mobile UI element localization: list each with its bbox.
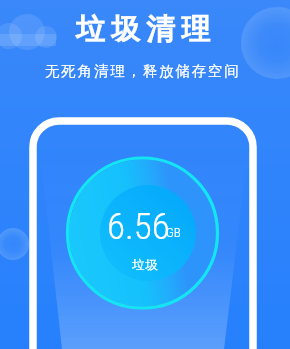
staticText: 垃圾 — [132, 257, 158, 273]
staticText: 垃圾清理 — [73, 11, 213, 48]
staticText: GB — [166, 225, 181, 240]
staticText: 无死角清理，释放储存空间 — [45, 62, 241, 80]
staticText: 6.56 — [107, 205, 170, 248]
